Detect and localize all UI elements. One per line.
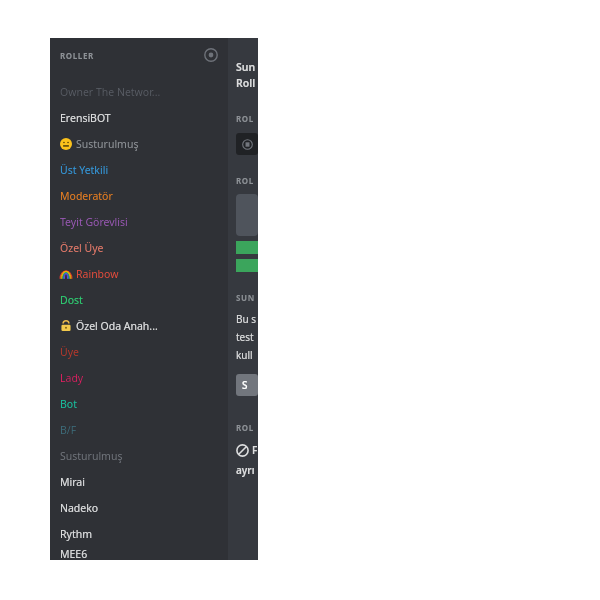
staticText: Susturulmuş [60, 449, 123, 463]
button[interactable]: MEE6 [50, 547, 228, 560]
staticText: ErensiBOT [60, 111, 111, 125]
button[interactable]: Owner The Networ... [50, 79, 228, 105]
button[interactable]: Üst Yetkili [50, 157, 228, 183]
staticText: ROLLER [60, 50, 94, 61]
staticText: Özel Oda Anah... [76, 319, 158, 333]
staticText: ROL [236, 113, 257, 124]
button[interactable]: Nadeko [50, 495, 228, 521]
button[interactable]: Rythm [50, 521, 228, 547]
staticText: S [242, 378, 248, 392]
staticText: Owner The Networ... [60, 85, 161, 99]
button[interactable]: Rol ekle [202, 46, 220, 64]
staticText: Lady [60, 371, 84, 385]
staticText: Üye [60, 345, 79, 359]
staticText: Sunu [236, 60, 258, 74]
button[interactable]: Susturulmuş [50, 131, 228, 157]
staticText: Bu s [236, 312, 257, 326]
button[interactable]: B/F [50, 417, 228, 443]
button[interactable]: Bot [50, 391, 228, 417]
button[interactable]: Mirai [50, 469, 228, 495]
button[interactable]: Özel Oda Anah... [50, 313, 228, 339]
staticText: Rythm [60, 527, 92, 541]
staticText: Rolle [236, 76, 258, 90]
button[interactable]: Üye [50, 339, 228, 365]
staticText: F [252, 443, 258, 457]
staticText: ROL [236, 422, 257, 433]
staticText: Teyit Görevlisi [60, 215, 128, 229]
staticText: SUNU [236, 292, 258, 303]
staticText: Dost [60, 293, 83, 307]
staticText: ayrı [236, 463, 255, 477]
staticText: test [236, 330, 254, 344]
staticText: Mirai [60, 475, 85, 489]
staticText: ROL [236, 175, 257, 186]
button[interactable]: ROLLER [50, 38, 228, 72]
staticText: Nadeko [60, 501, 99, 515]
button[interactable]: Moderatör [50, 183, 228, 209]
staticText: MEE6 [60, 547, 88, 560]
button[interactable]: S [236, 374, 258, 396]
staticText: Özel Üye [60, 241, 104, 255]
button[interactable]: Özel Üye [50, 235, 228, 261]
staticText: Susturulmuş [76, 137, 139, 151]
staticText: Rainbow [76, 267, 119, 281]
button[interactable]: Dost [50, 287, 228, 313]
staticText: kulla [236, 348, 258, 362]
button[interactable]: Teyit Görevlisi [50, 209, 228, 235]
button[interactable]: Rainbow [50, 261, 228, 287]
staticText: Bot [60, 397, 77, 411]
button[interactable]: Susturulmuş [50, 443, 228, 469]
button[interactable]: Lady [50, 365, 228, 391]
button[interactable] [236, 133, 258, 155]
staticText: Üst Yetkili [60, 163, 109, 177]
button[interactable]: ErensiBOT [50, 105, 228, 131]
staticText: B/F [60, 423, 77, 437]
staticText: Moderatör [60, 189, 113, 203]
